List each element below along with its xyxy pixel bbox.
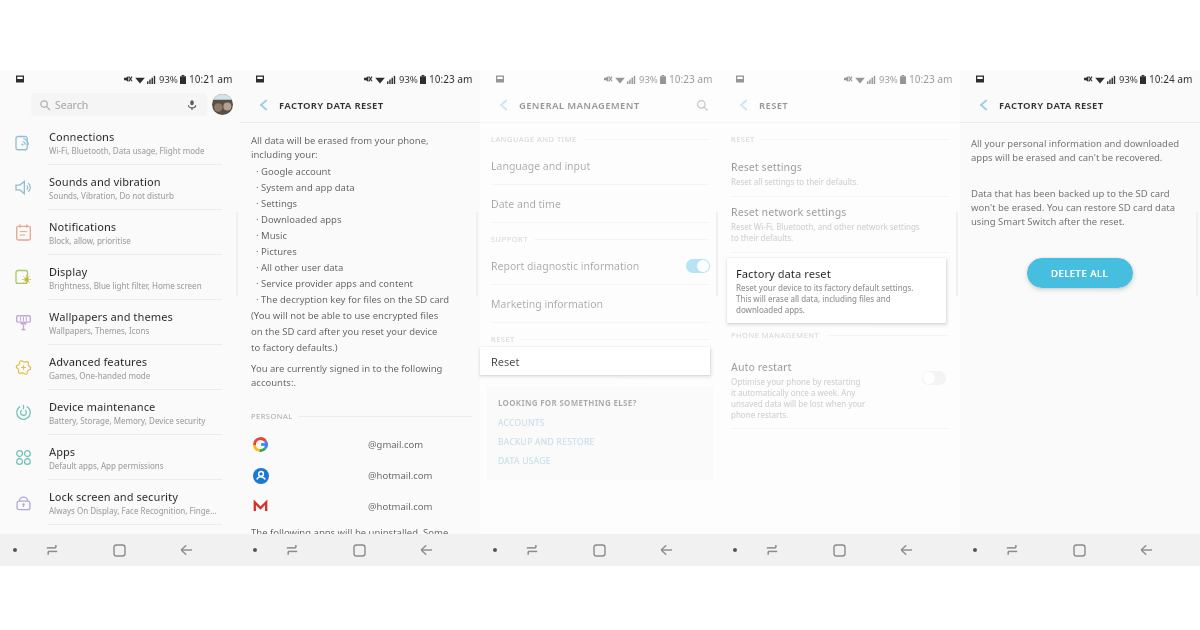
button[interactable]: Back xyxy=(494,95,514,115)
staticText: GENERAL MANAGEMENT xyxy=(519,99,640,112)
staticText: · System and app data xyxy=(256,181,355,194)
button[interactable]: Reset settings xyxy=(720,152,960,197)
button[interactable]: Home xyxy=(825,534,853,566)
staticText: Apps xyxy=(49,444,76,459)
button[interactable]: DATA USAGE xyxy=(498,451,705,470)
button[interactable]: Search xyxy=(692,95,712,115)
staticText: (You will not be able to use encrypted f… xyxy=(251,309,439,354)
staticText: ACCOUNTS xyxy=(498,417,545,429)
button[interactable]: Report diagnostic information xyxy=(480,247,720,285)
button[interactable]: Back xyxy=(652,534,680,566)
button[interactable]: Home xyxy=(585,534,613,566)
staticText: Auto restart xyxy=(731,360,792,374)
staticText: Device maintenance xyxy=(49,399,156,414)
staticText: Marketing information xyxy=(491,297,604,311)
staticText: LANGUAGE AND TIME xyxy=(491,134,577,144)
button[interactable]: Wallpapers and themes xyxy=(0,300,240,345)
staticText: Notifications xyxy=(49,219,117,234)
staticText: You are currently signed in to the follo… xyxy=(251,362,443,389)
staticText: 10:23 am xyxy=(669,72,713,86)
button[interactable]: Lock screen and security xyxy=(0,480,240,525)
button[interactable]: Recents xyxy=(518,534,546,566)
staticText: Language and input xyxy=(491,159,591,173)
staticText: Always On Display, Face Recognition, Fin… xyxy=(49,505,217,516)
button[interactable]: Menu xyxy=(242,534,268,566)
staticText: RESET xyxy=(491,334,515,344)
button[interactable]: Reset network settings xyxy=(720,197,960,253)
button[interactable]: Connections xyxy=(0,120,240,165)
button[interactable]: Display xyxy=(0,255,240,300)
staticText: Report diagnostic information xyxy=(491,259,640,273)
staticText: Reset Wi-Fi, Bluetooth, and other networ… xyxy=(731,221,920,243)
staticText: 93% xyxy=(639,73,658,86)
button[interactable]: Search xyxy=(31,93,207,116)
staticText: All data will be erased from your phone,… xyxy=(251,134,429,161)
staticText: PERSONAL xyxy=(251,411,293,421)
staticText: · Downloaded apps xyxy=(256,213,342,226)
button[interactable]: Reset xyxy=(480,347,710,375)
button[interactable]: Back xyxy=(974,95,994,115)
staticText: @gmail.com xyxy=(368,438,424,451)
button[interactable]: Recents xyxy=(38,534,66,566)
button[interactable]: Device maintenance xyxy=(0,390,240,435)
button[interactable]: Sounds and vibration xyxy=(0,165,240,210)
button[interactable]: DELETE ALL xyxy=(1027,258,1133,288)
staticText: · All other user data xyxy=(256,261,344,274)
staticText: Date and time xyxy=(491,197,561,211)
button[interactable]: Home xyxy=(345,534,373,566)
staticText: · Pictures xyxy=(256,245,297,258)
staticText: Lock screen and security xyxy=(49,489,179,504)
button[interactable]: Factory data reset xyxy=(727,258,946,323)
button[interactable]: @hotmail.com xyxy=(251,491,472,522)
button[interactable]: Advanced features xyxy=(0,345,240,390)
staticText: PHONE MANAGEMENT xyxy=(731,330,820,340)
button[interactable]: Notifications xyxy=(0,210,240,255)
button[interactable]: Date and time xyxy=(480,185,720,223)
staticText: Optimise your phone by restarting it aut… xyxy=(731,376,866,420)
button[interactable]: Profile xyxy=(212,94,233,115)
button[interactable]: Menu xyxy=(482,534,508,566)
staticText: Connections xyxy=(49,129,115,144)
button[interactable]: Recents xyxy=(758,534,786,566)
button[interactable]: @hotmail.com xyxy=(251,460,472,491)
staticText: DELETE ALL xyxy=(1051,267,1109,280)
button[interactable]: Voice search xyxy=(183,96,200,113)
staticText: LOOKING FOR SOMETHING ELSE? xyxy=(498,397,637,408)
button[interactable]: Back xyxy=(254,95,274,115)
staticText: Data that has been backed up to the SD c… xyxy=(971,187,1175,228)
button[interactable]: Home xyxy=(1065,534,1093,566)
staticText: Sounds, Vibration, Do not disturb xyxy=(49,190,174,201)
staticText: · Music xyxy=(256,229,288,242)
button[interactable]: Menu xyxy=(722,534,748,566)
button[interactable]: Marketing information xyxy=(480,285,720,323)
button[interactable]: Recents xyxy=(278,534,306,566)
button[interactable]: ACCOUNTS xyxy=(498,413,705,432)
button[interactable]: Back xyxy=(1132,534,1160,566)
button[interactable]: Home xyxy=(105,534,133,566)
button[interactable]: Menu xyxy=(962,534,988,566)
staticText: 93% xyxy=(399,73,418,86)
staticText: Search xyxy=(55,98,89,112)
button[interactable]: Menu xyxy=(2,534,28,566)
button[interactable]: Back xyxy=(412,534,440,566)
staticText: @hotmail.com xyxy=(368,469,433,482)
staticText: 93% xyxy=(159,73,178,86)
staticText: · Service provider apps and content xyxy=(256,277,413,290)
staticText: FACTORY DATA RESET xyxy=(279,99,384,112)
staticText: 10:21 am xyxy=(189,72,233,86)
staticText: Display xyxy=(49,264,88,279)
staticText: · Settings xyxy=(256,197,298,210)
staticText: BACKUP AND RESTORE xyxy=(498,436,595,448)
button[interactable]: Recents xyxy=(998,534,1026,566)
staticText: Wi-Fi, Bluetooth, Data usage, Flight mod… xyxy=(49,145,205,156)
button[interactable]: Back xyxy=(172,534,200,566)
staticText: Advanced features xyxy=(49,354,148,369)
button[interactable]: Apps xyxy=(0,435,240,480)
button[interactable]: Language and input xyxy=(480,147,720,185)
button[interactable]: BACKUP AND RESTORE xyxy=(498,432,705,451)
staticText: · The decryption key for files on the SD… xyxy=(256,293,450,306)
staticText: Battery, Storage, Memory, Device securit… xyxy=(49,415,206,426)
button[interactable]: @gmail.com xyxy=(251,429,472,460)
button[interactable]: Back xyxy=(734,95,754,115)
button[interactable]: Back xyxy=(892,534,920,566)
